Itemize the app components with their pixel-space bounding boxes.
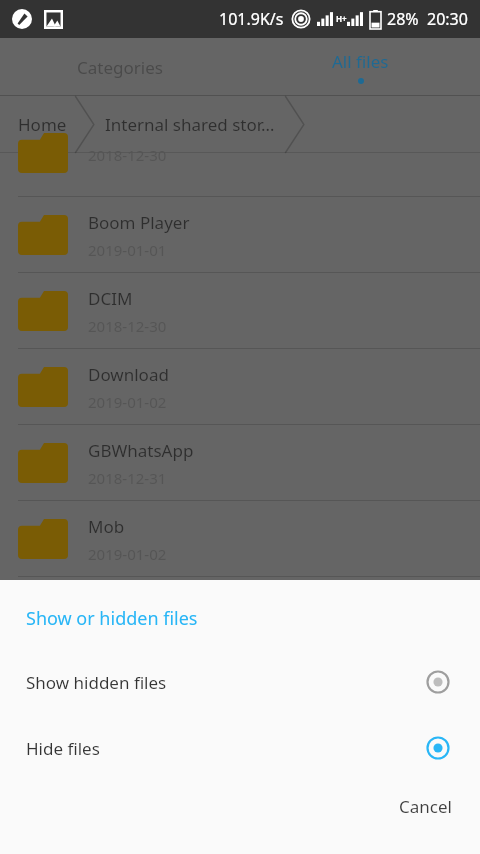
staticText: Mob	[88, 515, 125, 538]
staticText: H+	[336, 13, 347, 24]
button[interactable]: Mob	[0, 501, 480, 577]
button[interactable]: Internal shared stor…	[95, 113, 283, 136]
button[interactable]: All files	[240, 38, 480, 96]
staticText: 2019-01-02	[88, 392, 167, 412]
staticText: 2019-01-02	[88, 544, 167, 564]
staticText: 2018-12-30	[88, 316, 167, 336]
staticText: 2018-12-30	[88, 145, 167, 165]
button[interactable]: Home	[18, 113, 73, 136]
staticText: Internal shared stor…	[105, 113, 275, 136]
button[interactable]: Show hidden files	[0, 649, 480, 715]
staticText: Cancel	[399, 795, 452, 818]
staticText: Download	[88, 363, 169, 386]
staticText: Show hidden files	[26, 671, 167, 694]
button[interactable]: DCIM	[0, 273, 480, 349]
button[interactable]: Hide files	[0, 715, 480, 781]
button[interactable]: Boom Player	[0, 197, 480, 273]
staticText: Boom Player	[88, 211, 190, 234]
staticText: 20:30	[427, 8, 468, 30]
staticText: Hide files	[26, 737, 100, 760]
staticText: Home	[18, 113, 67, 136]
staticText: 28%	[387, 8, 419, 30]
staticText: DCIM	[88, 287, 133, 310]
staticText: 2019-01-01	[88, 240, 167, 260]
staticText: Categories	[77, 56, 163, 79]
button[interactable]: GBWhatsApp	[0, 425, 480, 501]
staticText: Show or hidden files	[26, 606, 198, 631]
staticText: 2018-12-31	[88, 468, 167, 488]
staticText: All files	[332, 50, 389, 73]
button[interactable]: Download	[0, 349, 480, 425]
button[interactable]: Categories	[0, 38, 240, 96]
button[interactable]: Cancel	[371, 781, 480, 832]
staticText: GBWhatsApp	[88, 439, 194, 462]
staticText: 101.9K/s	[219, 8, 284, 30]
